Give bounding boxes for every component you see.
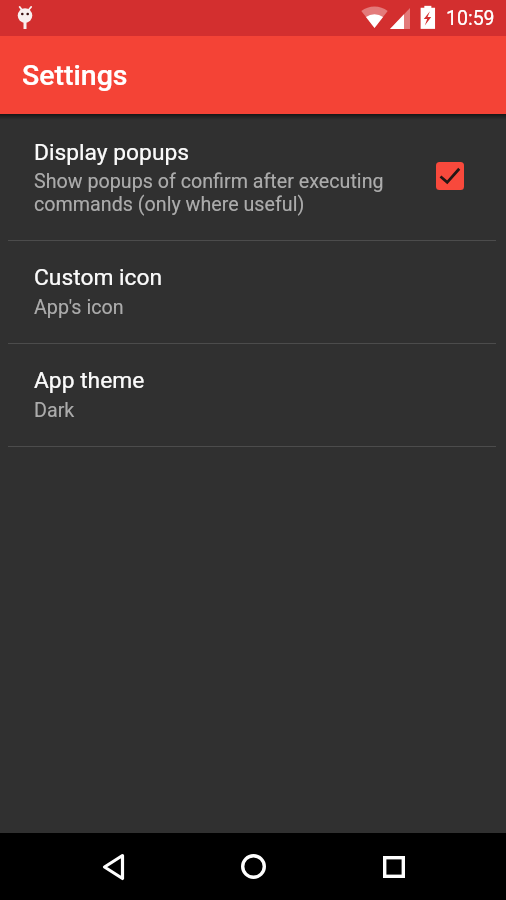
staticText: App theme [34, 367, 145, 394]
button[interactable]: Display popups [0, 114, 506, 240]
button[interactable]: Display popups checkbox [436, 162, 464, 190]
staticText: App's icon [34, 296, 124, 319]
staticText: Custom icon [34, 264, 163, 291]
staticText: Show popups of confirm after executing c… [34, 170, 404, 216]
staticText: Dark [34, 399, 75, 422]
button[interactable]: Recent apps [354, 833, 434, 900]
button[interactable]: Home [213, 833, 293, 900]
button[interactable]: Back [73, 833, 153, 900]
button[interactable]: Custom icon [0, 240, 506, 343]
button[interactable]: App theme [0, 343, 506, 446]
staticText: Settings [22, 59, 128, 92]
staticText: Display popups [34, 139, 190, 166]
staticText: 10:59 [446, 7, 495, 30]
